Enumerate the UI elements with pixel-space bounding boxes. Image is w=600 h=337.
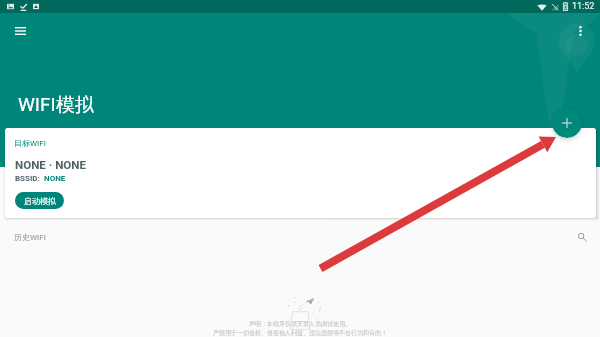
staticText: 严禁用于一切侵权、侵害他人利益、违法违禁等不当行为和目的！: [213, 329, 387, 337]
staticText: 启动模拟: [24, 196, 56, 206]
staticText: WIFI模拟: [18, 93, 94, 117]
staticText: BSSID:: [15, 174, 40, 183]
button[interactable]: Menu: [0, 11, 40, 51]
button[interactable]: 目标WIFI: [5, 128, 596, 218]
staticText: NONE: [44, 174, 66, 183]
button[interactable]: More options: [560, 11, 600, 51]
button[interactable]: 启动模拟: [15, 192, 64, 209]
button[interactable]: Add: [552, 108, 582, 138]
staticText: 11:52: [572, 1, 595, 12]
button[interactable]: Search: [572, 227, 592, 247]
staticText: 历史WIFI: [14, 232, 46, 242]
staticText: NONE · NONE: [15, 158, 87, 172]
staticText: 声明：本程序仅供开发人员调试使用。: [249, 320, 351, 328]
staticText: 目标WIFI: [14, 138, 46, 148]
